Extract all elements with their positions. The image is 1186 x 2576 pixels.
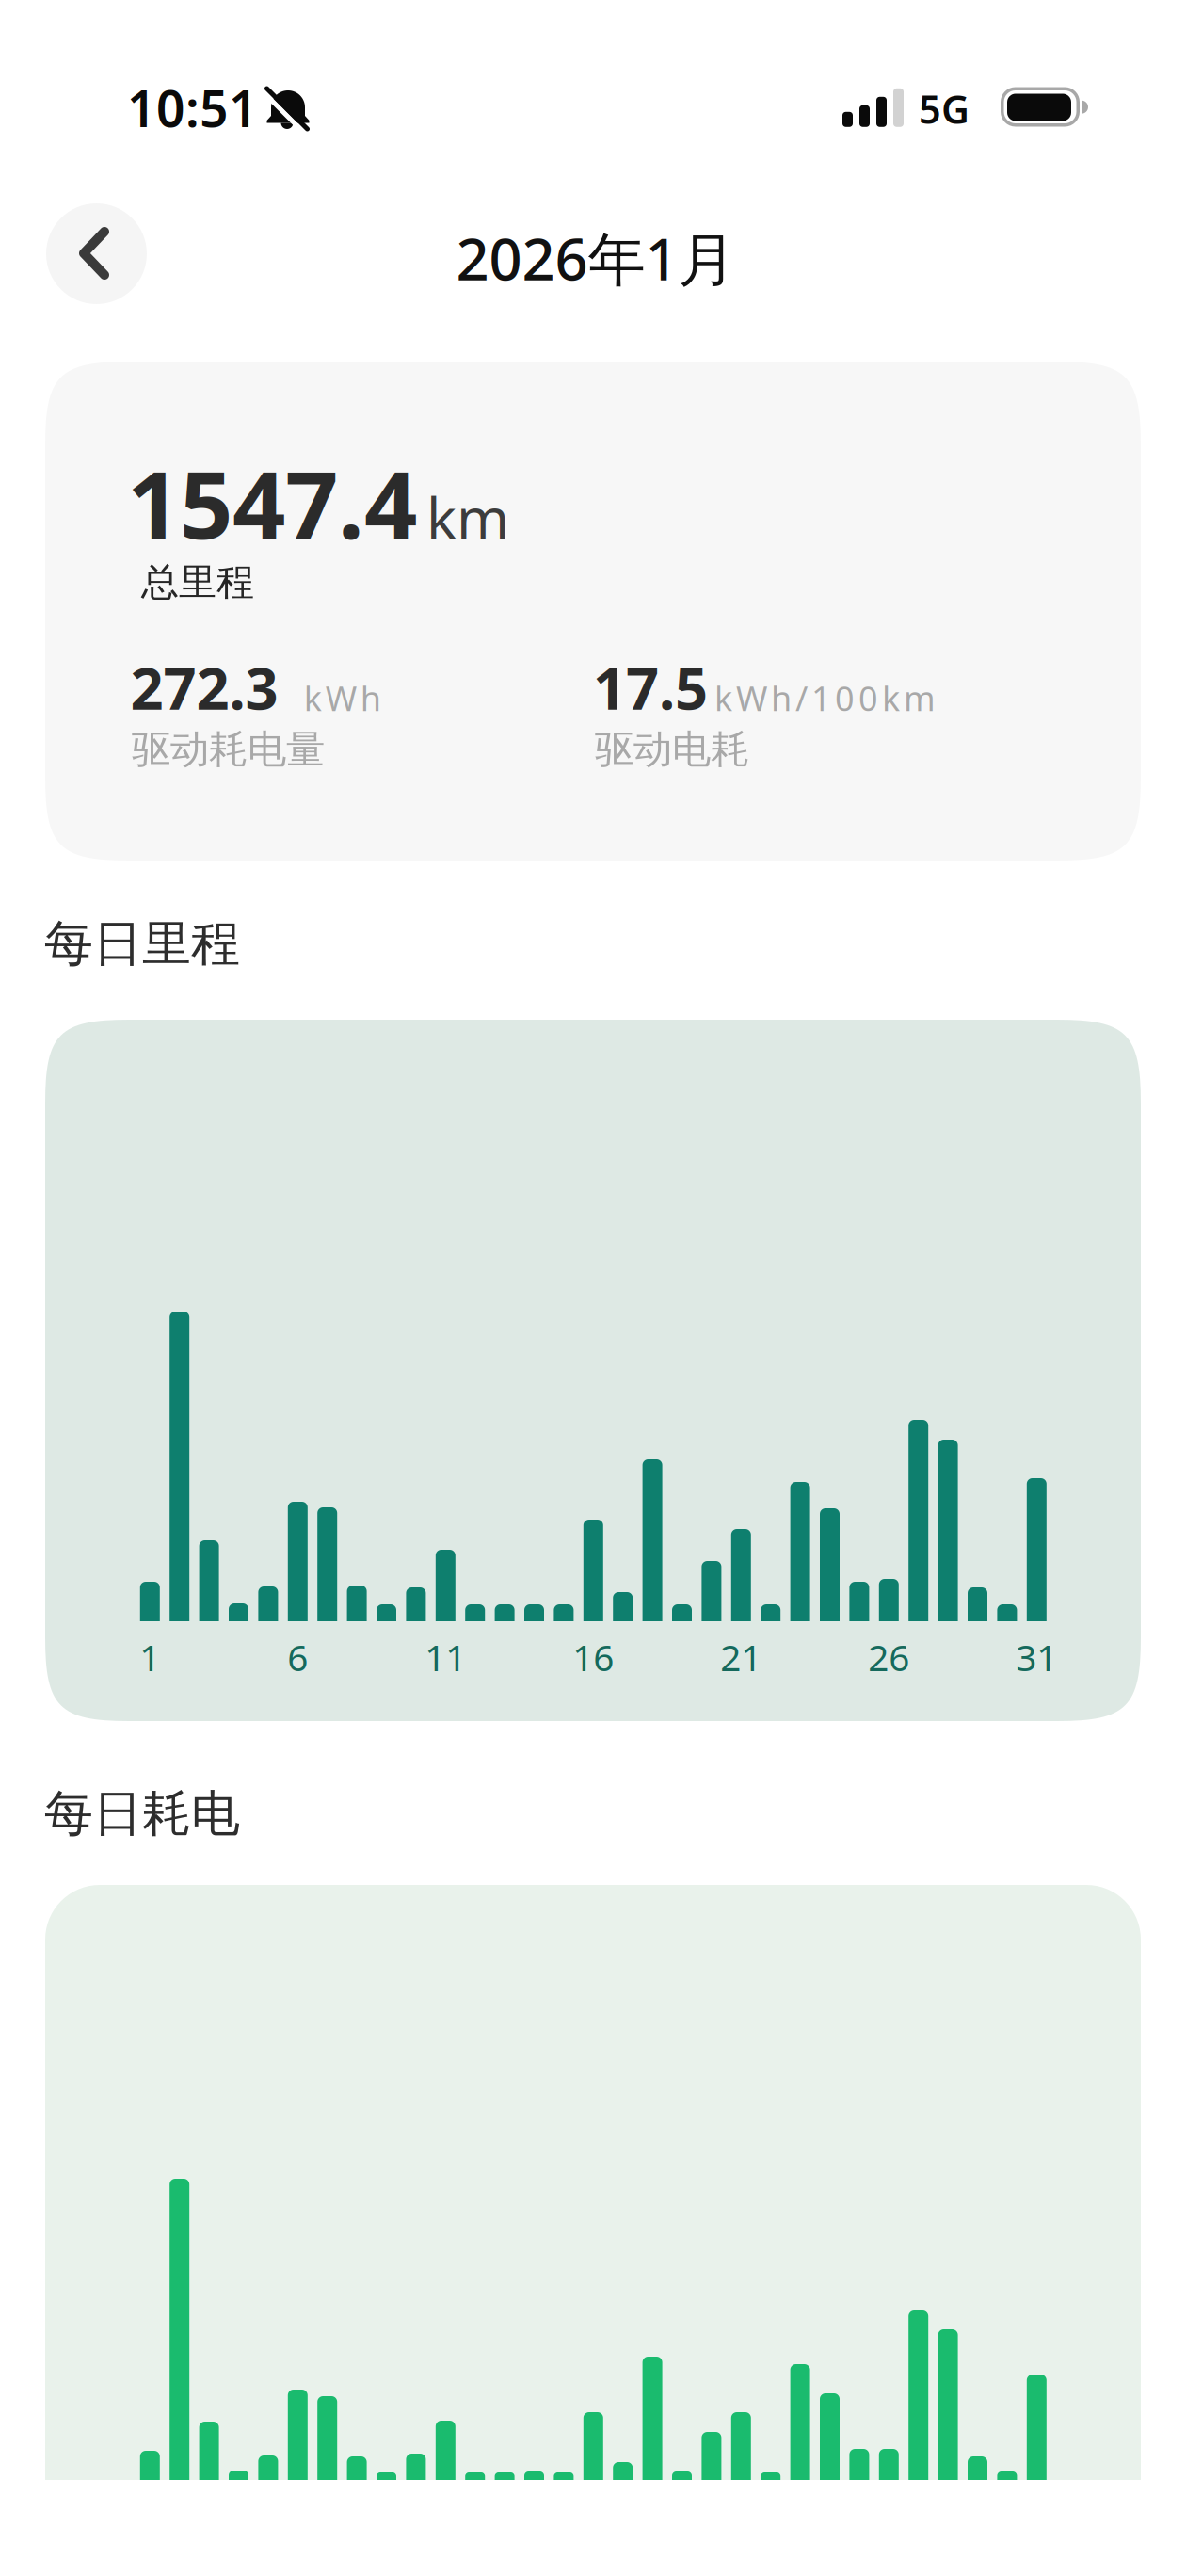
staticText: 每日耗电 [44,1784,240,1844]
staticText: 总里程 [141,559,254,605]
staticText: 16 [573,1633,614,1681]
staticText: 5G [919,83,970,135]
staticText: 驱动耗电量 [132,726,325,773]
staticText: 2026年1月 [456,220,736,296]
staticText: 31 [1016,1633,1057,1681]
staticText: kWh/100km [714,676,936,721]
button[interactable] [46,203,147,304]
staticText: 1547.4 [127,441,417,565]
staticText: 1 [140,1633,160,1681]
staticText: 驱动电耗 [595,726,749,773]
staticText: 每日里程 [44,914,240,974]
staticText: km [426,480,509,555]
staticText: 17.5 [593,649,708,726]
staticText: 26 [868,1633,910,1681]
staticText: 272.3 [130,649,278,726]
staticText: 6 [287,1633,308,1681]
staticText: 21 [720,1633,762,1681]
staticText: kWh [304,676,381,721]
staticText: 11 [425,1633,466,1681]
staticText: 10:51 [127,74,258,141]
